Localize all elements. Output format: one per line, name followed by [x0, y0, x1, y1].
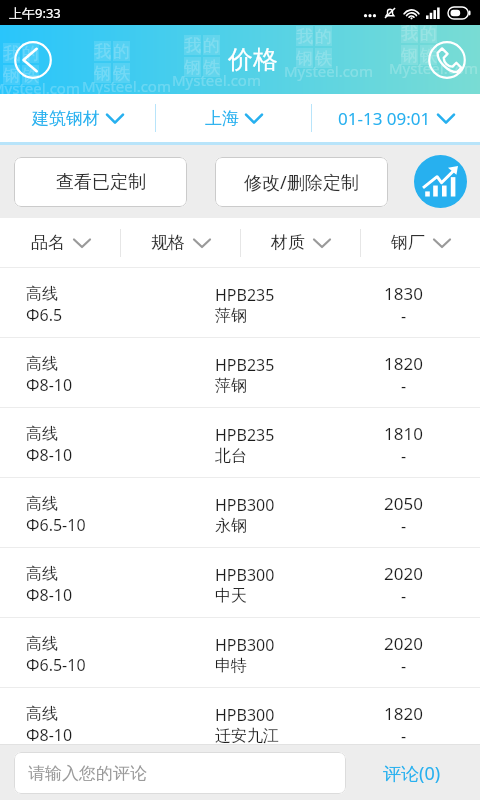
staticText: Φ6.5-10	[26, 514, 86, 536]
staticText: HPB235	[215, 354, 275, 376]
staticText: 铁	[203, 57, 220, 77]
staticText: HPB300	[215, 494, 275, 516]
button[interactable]: 高线	[0, 688, 480, 758]
staticText: -	[401, 585, 407, 607]
staticText: Φ8-10	[26, 724, 73, 746]
button[interactable]: Price trend chart	[414, 155, 467, 208]
staticText: 建筑钢材	[32, 108, 100, 129]
staticText: 评论(0)	[383, 761, 441, 786]
staticText: 铁	[113, 63, 130, 83]
staticText: 中天	[215, 586, 247, 606]
button[interactable]: 01-13 09:01	[312, 94, 480, 142]
staticText: 上海	[205, 108, 239, 129]
staticText: 我	[296, 26, 313, 46]
staticText: 我	[184, 35, 201, 55]
staticText: 的	[315, 26, 332, 46]
staticText: 1810	[384, 422, 423, 445]
staticText: Mysteel.com	[82, 76, 171, 94]
staticText: Mysteel.com	[0, 78, 80, 94]
staticText: 的	[420, 25, 437, 43]
staticText: 永钢	[215, 516, 247, 536]
button[interactable]: 材质	[241, 218, 360, 267]
staticText: 铁	[315, 48, 332, 68]
button[interactable]: 高线	[0, 478, 480, 548]
staticText: 高线	[26, 564, 58, 584]
button[interactable]: 规格	[121, 218, 240, 267]
staticText: -	[401, 725, 407, 747]
staticText: 高线	[26, 494, 58, 514]
staticText: 上午9:33	[9, 4, 61, 22]
staticText: HPB300	[215, 704, 275, 726]
button[interactable]: 高线	[0, 268, 480, 338]
staticText: 2020	[384, 562, 423, 585]
staticText: 高线	[26, 704, 58, 724]
staticText: HPB235	[215, 284, 275, 306]
staticText: 高线	[26, 424, 58, 444]
button[interactable]: 高线	[0, 618, 480, 688]
staticText: 品名	[31, 232, 65, 253]
staticText: -	[401, 515, 407, 537]
staticText: 北台	[215, 446, 247, 466]
staticText: 钢	[3, 65, 20, 85]
staticText: 我	[94, 41, 111, 61]
staticText: 铁	[22, 65, 39, 85]
staticText: -	[401, 375, 407, 397]
staticText: 2050	[384, 492, 423, 515]
staticText: 钢	[401, 45, 418, 65]
staticText: 迁安九江	[215, 726, 279, 746]
button[interactable]: 上海	[156, 94, 311, 142]
staticText: 的	[22, 43, 39, 63]
button[interactable]: 评论(0)	[383, 752, 480, 794]
button[interactable]: 高线	[0, 408, 480, 478]
staticText: 价格	[228, 44, 278, 75]
staticText: Φ6.5	[26, 304, 63, 326]
staticText: HPB300	[215, 634, 275, 656]
staticText: HPB300	[215, 564, 275, 586]
button[interactable]: 高线	[0, 548, 480, 618]
staticText: Φ8-10	[26, 374, 73, 396]
staticText: -	[401, 305, 407, 327]
staticText: -	[401, 445, 407, 467]
button[interactable]: Back	[12, 39, 54, 81]
staticText: 萍钢	[215, 306, 247, 326]
button[interactable]: 钢厂	[361, 218, 480, 267]
button[interactable]: 高线	[0, 338, 480, 408]
button[interactable]: 请输入您的评论	[14, 752, 346, 794]
button[interactable]: 建筑钢材	[0, 94, 155, 142]
staticText: 钢	[184, 57, 201, 77]
staticText: 的	[113, 41, 130, 61]
staticText: -	[401, 655, 407, 677]
staticText: 的	[203, 35, 220, 55]
staticText: 高线	[26, 354, 58, 374]
staticText: 01-13 09:01	[338, 107, 431, 130]
staticText: 请输入您的评论	[28, 763, 147, 784]
staticText: 钢	[296, 48, 313, 68]
staticText: 1820	[384, 352, 423, 375]
staticText: 查看已定制	[56, 171, 146, 194]
staticText: 1820	[384, 702, 423, 725]
staticText: 1830	[384, 282, 423, 305]
button[interactable]: 查看已定制	[14, 157, 187, 207]
staticText: Mysteel.com	[284, 61, 373, 81]
button[interactable]: Call	[426, 39, 468, 81]
staticText: 铁	[420, 45, 437, 65]
staticText: Mysteel.com	[389, 58, 478, 78]
staticText: 我	[3, 43, 20, 63]
staticText: 修改/删除定制	[244, 170, 359, 195]
staticText: Φ6.5-10	[26, 654, 86, 676]
staticText: 申特	[215, 656, 247, 676]
staticText: 材质	[271, 232, 305, 253]
staticText: HPB235	[215, 424, 275, 446]
staticText: 2020	[384, 632, 423, 655]
staticText: 高线	[26, 284, 58, 304]
button[interactable]: 品名	[0, 218, 120, 267]
staticText: 萍钢	[215, 376, 247, 396]
button[interactable]: 修改/删除定制	[215, 157, 388, 207]
staticText: Φ8-10	[26, 584, 73, 606]
staticText: 高线	[26, 634, 58, 654]
staticText: 钢	[94, 63, 111, 83]
staticText: 我	[401, 25, 418, 43]
staticText: Mysteel.com	[172, 70, 261, 90]
staticText: 规格	[151, 232, 185, 253]
staticText: Φ8-10	[26, 444, 73, 466]
